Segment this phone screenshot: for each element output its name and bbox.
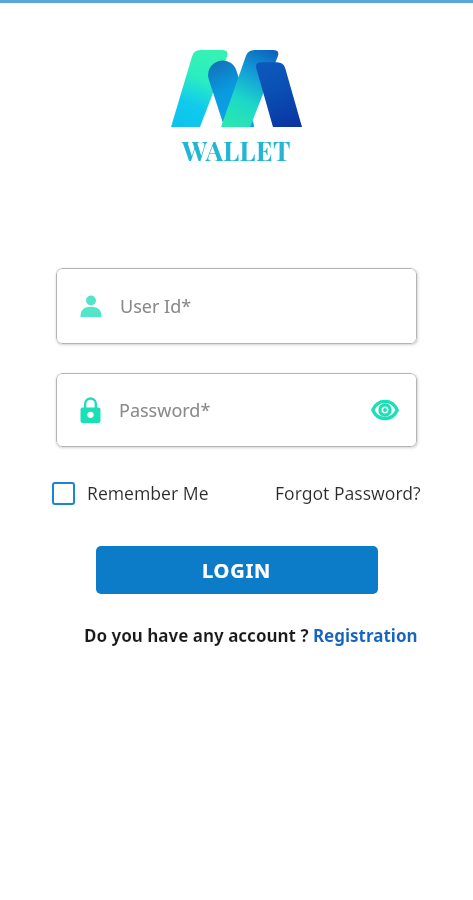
- staticText: Password*: [119, 398, 368, 423]
- button[interactable]: Remember Me: [52, 481, 209, 505]
- button[interactable]: Forgot Password?: [275, 481, 421, 505]
- button[interactable]: Show password: [368, 393, 402, 427]
- staticText: Do you have any account ? Registration: [84, 624, 418, 647]
- staticText: LOGIN: [202, 557, 272, 584]
- button[interactable]: LOGIN: [96, 546, 378, 594]
- staticText: Remember Me: [87, 481, 209, 505]
- button[interactable]: User Id*: [56, 268, 417, 344]
- staticText: WALLET: [182, 133, 291, 168]
- button[interactable]: Password*: [56, 373, 417, 447]
- staticText: User Id*: [120, 294, 192, 319]
